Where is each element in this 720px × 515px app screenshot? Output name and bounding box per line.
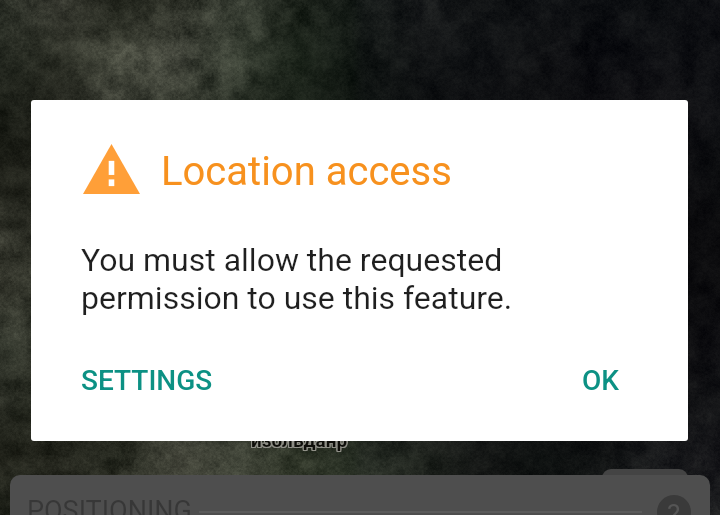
- staticText: изольданр: [252, 428, 349, 450]
- staticText: изольданр: [250, 429, 347, 451]
- staticText: OK: [582, 364, 619, 397]
- staticText: изольданр: [250, 428, 347, 450]
- staticText: SETTINGS: [81, 364, 213, 397]
- staticText: изольданр: [251, 429, 348, 451]
- staticText: изольданр: [251, 428, 348, 450]
- staticText: изольданр: [252, 429, 349, 451]
- button[interactable]: Expand panel: [602, 469, 688, 491]
- staticText: ?: [667, 498, 681, 515]
- button[interactable]: [10, 475, 710, 515]
- button[interactable]: OK: [573, 356, 628, 405]
- staticText: You must allow the requested permission …: [81, 241, 513, 317]
- staticText: изольданр: [251, 430, 348, 452]
- staticText: POSITIONING: [27, 495, 192, 515]
- staticText: изольданр: [252, 430, 349, 452]
- staticText: Location access: [161, 148, 452, 195]
- staticText: изольданр: [250, 430, 347, 452]
- button[interactable]: SETTINGS: [72, 356, 222, 405]
- button[interactable]: Help: [657, 495, 691, 515]
